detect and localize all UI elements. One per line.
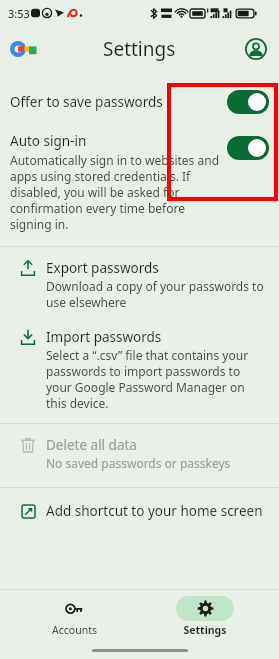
button[interactable]: Toggle on: [227, 90, 269, 114]
staticText: Settings: [183, 623, 227, 637]
staticText: Auto sign-in: [10, 132, 87, 150]
staticText: Download a copy of your passwords to use…: [46, 278, 267, 310]
button[interactable]: Delete all data: [0, 424, 279, 477]
button[interactable]: Import passwords: [0, 316, 279, 417]
button[interactable]: Add shortcut to your home screen: [0, 488, 279, 528]
staticText: Select a “.csv” file that contains your …: [46, 347, 267, 411]
staticText: Offer to save passwords: [10, 93, 227, 111]
staticText: Delete all data: [46, 436, 137, 454]
button[interactable]: Account: [241, 34, 271, 64]
staticText: Settings: [103, 36, 176, 62]
staticText: Automatically sign in to websites and ap…: [10, 152, 219, 232]
staticText: Accounts: [52, 623, 97, 637]
button[interactable]: Export passwords: [0, 247, 279, 316]
button[interactable]: Auto sign-in: [0, 130, 279, 238]
staticText: No saved passwords or passkeys: [46, 455, 231, 471]
staticText: Add shortcut to your home screen: [46, 502, 263, 520]
button[interactable]: Google Password Manager: [8, 34, 38, 64]
button[interactable]: Offer to save passwords: [0, 82, 279, 122]
staticText: Export passwords: [46, 259, 159, 277]
button[interactable]: Toggle on: [227, 136, 269, 160]
button[interactable]: Settings: [149, 593, 261, 640]
staticText: 3:53: [8, 6, 30, 21]
button[interactable]: Accounts: [18, 593, 130, 640]
staticText: Import passwords: [46, 328, 162, 346]
